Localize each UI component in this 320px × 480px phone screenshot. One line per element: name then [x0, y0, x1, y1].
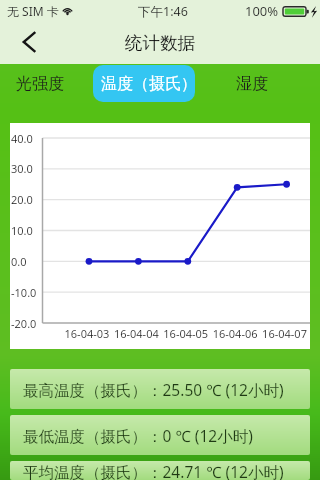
staticText: 温度（摄氏） [101, 74, 195, 94]
staticText: 光强度 [16, 74, 64, 94]
staticText: 100% [245, 2, 279, 20]
button[interactable]: 平均温度（摄氏）：24.71 ℃ (12小时) [10, 461, 310, 480]
button[interactable]: 温度（摄氏） [93, 65, 195, 102]
button[interactable]: 最低温度（摄氏）：0 ℃ (12小时) [10, 415, 310, 455]
staticText: 无 SIM 卡 [7, 3, 59, 19]
staticText: 平均温度（摄氏）：24.71 ℃ (12小时) [23, 461, 284, 480]
staticText: 统计数据 [125, 32, 195, 54]
staticText: 最低温度（摄氏）：0 ℃ (12小时) [23, 425, 253, 446]
staticText: 下午1:46 [138, 3, 188, 20]
button[interactable]: 最高温度（摄氏）：25.50 ℃ (12小时) [10, 369, 310, 409]
button[interactable]: Back [0, 22, 58, 64]
staticText: 湿度 [236, 74, 268, 94]
staticText: 最高温度（摄氏）：25.50 ℃ (12小时) [23, 379, 284, 400]
button[interactable]: 光强度 [0, 64, 80, 103]
button[interactable]: 湿度 [212, 64, 292, 103]
